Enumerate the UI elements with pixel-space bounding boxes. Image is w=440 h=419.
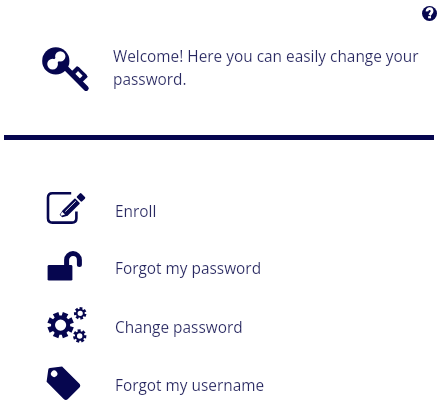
staticText: Forgot my username	[115, 375, 265, 396]
button[interactable]: Enroll	[0, 190, 440, 238]
button[interactable]: Change password	[0, 307, 440, 355]
staticText: Change password	[115, 317, 243, 338]
staticText: Welcome! Here you can easily change your…	[113, 46, 433, 90]
button[interactable]: Help	[422, 6, 437, 21]
staticText: Enroll	[115, 201, 157, 222]
button[interactable]: Forgot my password	[0, 249, 440, 297]
staticText: Forgot my password	[115, 258, 262, 279]
button[interactable]: Forgot my username	[0, 365, 440, 413]
